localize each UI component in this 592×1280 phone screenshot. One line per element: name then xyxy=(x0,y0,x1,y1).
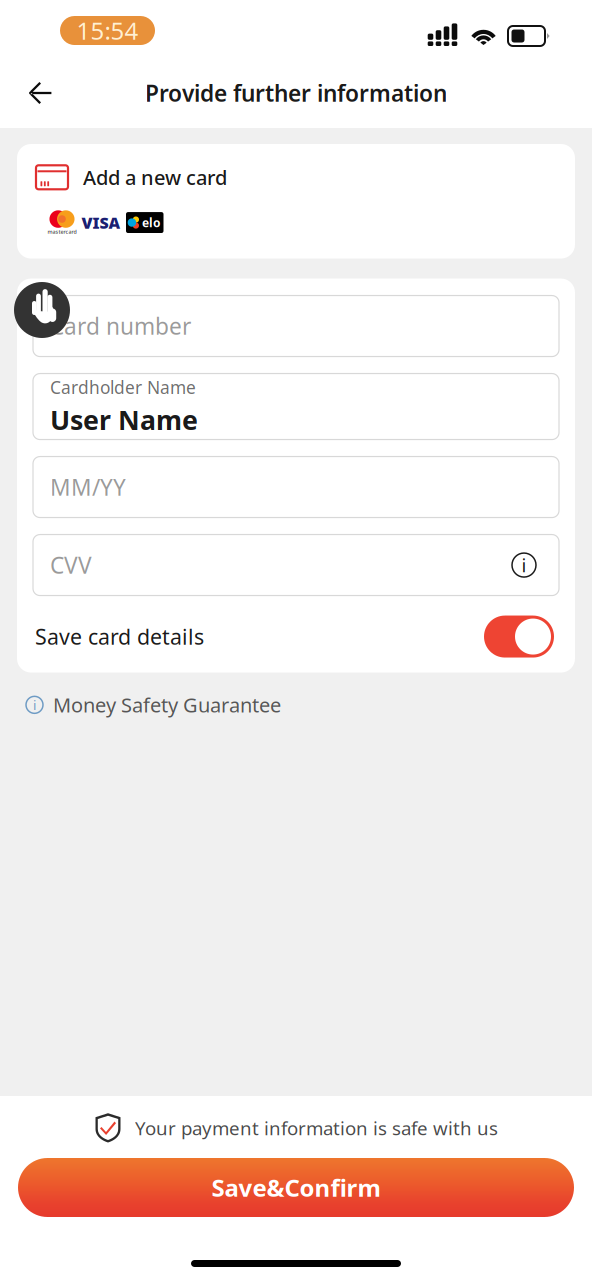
staticText: Save card details xyxy=(35,622,204,651)
staticText: Money Safety Guarantee xyxy=(53,692,281,718)
staticText: VISA xyxy=(81,212,120,233)
staticText: Card number xyxy=(50,311,191,341)
button[interactable]: Save&Confirm xyxy=(18,1158,574,1217)
staticText: Your payment information is safe with us xyxy=(135,1116,498,1140)
button[interactable]: What is CVV xyxy=(506,547,542,583)
staticText: i xyxy=(521,553,526,577)
staticText: MM/YY xyxy=(50,472,126,502)
staticText: elo xyxy=(142,215,161,230)
button[interactable]: i xyxy=(0,673,592,718)
staticText: Add a new card xyxy=(83,164,227,191)
staticText: Save&Confirm xyxy=(211,1172,380,1203)
staticText: i xyxy=(33,696,36,714)
button[interactable]: Back xyxy=(0,65,70,121)
staticText: Cardholder Name xyxy=(50,376,196,399)
staticText: mastercard xyxy=(47,228,76,235)
button[interactable]: Save card details xyxy=(33,607,559,667)
staticText: User Name xyxy=(50,402,198,437)
staticText: Provide further information xyxy=(145,78,447,108)
staticText: 15:54 xyxy=(76,15,138,46)
staticText: CVV xyxy=(50,550,92,580)
